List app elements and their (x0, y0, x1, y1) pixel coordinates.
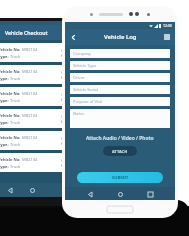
button[interactable]: Home (27, 185, 37, 195)
staticText: Truck (10, 54, 21, 59)
staticText: Purpose of Visit (73, 99, 103, 104)
staticText: Vehicle No: (0, 47, 22, 52)
staticText: MB2104 (22, 47, 38, 52)
button[interactable]: Driver (70, 73, 170, 82)
staticText: Vehicle No: (0, 91, 22, 96)
staticText: Truck (10, 76, 21, 81)
button[interactable]: Back (65, 29, 81, 45)
staticText: Company (73, 51, 91, 56)
button[interactable]: Vehicle Serial (70, 85, 170, 94)
button[interactable]: ATTACH (103, 146, 137, 156)
staticText: Vehicle No: (0, 113, 22, 118)
staticText: Vehicle Checkout (5, 29, 48, 36)
staticText: Truck (10, 120, 21, 125)
button[interactable]: Back (5, 185, 15, 195)
staticText: Truck (10, 142, 21, 147)
button[interactable]: Vehicle No: (0, 65, 67, 84)
button[interactable]: Recents (145, 189, 155, 199)
button[interactable]: Menu (159, 29, 175, 45)
button[interactable]: SUBMIT (77, 172, 163, 183)
staticText: Driver (73, 75, 85, 80)
staticText: 12:30 (163, 23, 172, 28)
button[interactable]: Vehicle Type (70, 61, 170, 70)
button[interactable]: Notes (70, 109, 170, 128)
staticText: MB2104 (22, 69, 38, 74)
staticText: Vehicle No: (0, 135, 22, 140)
staticText: Truck (10, 98, 21, 103)
staticText: Vehicle No: (0, 157, 22, 162)
staticText: Type: (0, 142, 10, 147)
staticText: Type: (0, 120, 10, 125)
button[interactable]: Company (70, 49, 170, 58)
staticText: Truck (10, 164, 21, 169)
staticText: Type: (0, 98, 10, 103)
button[interactable]: Home (115, 189, 125, 199)
staticText: Vehicle No: (0, 69, 22, 74)
staticText: Attach Audio / Video / Photo (86, 135, 154, 142)
button[interactable]: Back (85, 189, 95, 199)
staticText: MB2104 (22, 157, 38, 162)
button[interactable]: Vehicle No: (0, 131, 67, 150)
button[interactable]: Vehicle No: (0, 153, 67, 172)
staticText: Type: (0, 76, 10, 81)
button[interactable]: Vehicle No: (0, 109, 67, 128)
staticText: MB2104 (22, 91, 38, 96)
staticText: ATTACH (112, 149, 128, 154)
button[interactable]: Vehicle No: (0, 87, 67, 106)
staticText: Type: (0, 54, 10, 59)
staticText: MB2104 (22, 135, 38, 140)
staticText: Notes (73, 111, 85, 116)
staticText: SUBMIT (112, 175, 129, 181)
staticText: Vehicle Log (104, 33, 137, 41)
staticText: Vehicle Type (73, 63, 97, 68)
button[interactable]: Purpose of Visit (70, 97, 170, 106)
staticText: Vehicle Serial (73, 87, 98, 92)
staticText: MB2104 (22, 113, 38, 118)
staticText: Type: (0, 164, 10, 169)
button[interactable]: Vehicle No: (0, 43, 67, 62)
